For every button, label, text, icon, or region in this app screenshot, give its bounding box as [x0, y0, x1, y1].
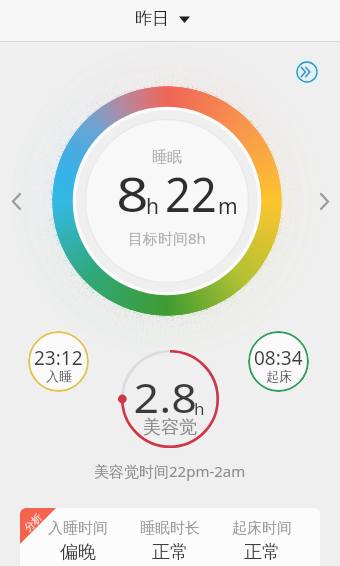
staticText: 昨日 — [135, 8, 169, 29]
staticText: 睡眠时长 — [140, 519, 200, 538]
staticText: 起床 — [266, 368, 292, 384]
staticText: 23:12 — [34, 345, 83, 371]
staticText: 起床时间 — [232, 519, 292, 538]
button[interactable]: 入睡时间 — [20, 508, 320, 566]
button[interactable]: Wake up — [248, 331, 309, 392]
button[interactable]: Previous day — [4, 189, 28, 213]
staticText: 偏晚 — [60, 541, 96, 564]
staticText: 22 — [165, 162, 217, 226]
staticText: 目标时间8h — [128, 228, 206, 248]
staticText: 正常 — [244, 541, 280, 564]
staticText: 分析 — [21, 511, 45, 534]
button[interactable]: 昨日 — [123, 1, 202, 36]
button[interactable]: 2.8 — [121, 350, 219, 448]
staticText: 睡眠 — [152, 148, 182, 167]
staticText: h — [194, 397, 205, 420]
staticText: 8 — [116, 162, 149, 226]
staticText: 美容觉 — [143, 416, 197, 439]
staticText: 正常 — [152, 541, 188, 564]
staticText: 2.8 — [134, 370, 197, 424]
staticText: 08:34 — [254, 345, 303, 371]
staticText: 入睡 — [46, 368, 72, 384]
button[interactable]: Next day — [312, 189, 336, 213]
staticText: m — [218, 192, 238, 221]
button[interactable]: Fast forward — [291, 56, 323, 88]
staticText: 美容觉时间22pm-2am — [94, 461, 246, 481]
button[interactable]: Bedtime — [28, 331, 89, 392]
staticText: 入睡时间 — [48, 519, 108, 538]
staticText: h — [146, 192, 159, 221]
button[interactable]: 睡眠 — [77, 111, 257, 291]
